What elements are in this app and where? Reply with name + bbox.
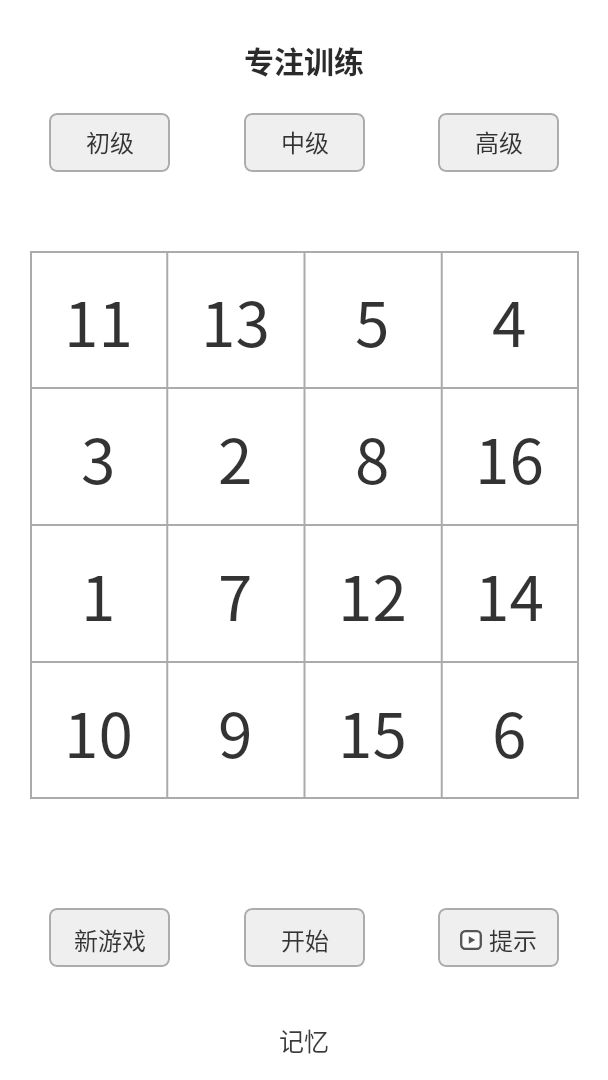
staticText: 初级 [86, 124, 134, 159]
staticText: 4 [492, 275, 527, 365]
button[interactable]: 8 [304, 388, 441, 525]
button[interactable]: 3 [30, 388, 167, 525]
button[interactable]: 2 [167, 388, 304, 525]
staticText: 7 [218, 549, 253, 639]
staticText: 中级 [281, 124, 329, 159]
button[interactable]: 10 [30, 662, 167, 799]
staticText: 6 [492, 686, 527, 776]
button[interactable]: 6 [441, 662, 578, 799]
button[interactable]: 中级 [244, 113, 365, 172]
staticText: 5 [355, 275, 390, 365]
staticText: 13 [201, 275, 270, 365]
button[interactable]: 13 [167, 251, 304, 388]
staticText: 开始 [281, 922, 329, 957]
staticText: 16 [475, 412, 544, 502]
button[interactable]: 7 [167, 525, 304, 662]
staticText: 1 [81, 549, 116, 639]
button[interactable]: 新游戏 [49, 908, 170, 967]
staticText: 3 [81, 412, 116, 502]
button[interactable]: 开始 [244, 908, 365, 967]
button[interactable]: 5 [304, 251, 441, 388]
button[interactable]: 1 [30, 525, 167, 662]
button[interactable]: 高级 [438, 113, 559, 172]
staticText: 高级 [475, 124, 523, 159]
button[interactable]: 15 [304, 662, 441, 799]
staticText: 记忆 [0, 1022, 608, 1058]
staticText: 新游戏 [74, 922, 146, 957]
button[interactable]: 提示 Hint [438, 908, 559, 967]
staticText: 10 [64, 686, 133, 776]
other: 提示 Hint [460, 930, 482, 950]
button[interactable]: 11 [30, 251, 167, 388]
staticText: 9 [218, 686, 253, 776]
staticText: 8 [355, 412, 390, 502]
staticText: 提示 [489, 922, 537, 957]
staticText: 15 [338, 686, 407, 776]
button[interactable]: 9 [167, 662, 304, 799]
button[interactable]: 4 [441, 251, 578, 388]
staticText: 11 [64, 275, 133, 365]
button[interactable]: 16 [441, 388, 578, 525]
staticText: 2 [218, 412, 253, 502]
staticText: 专注训练 [0, 38, 608, 81]
button[interactable]: 14 [441, 525, 578, 662]
button[interactable]: 12 [304, 525, 441, 662]
button[interactable]: 初级 [49, 113, 170, 172]
staticText: 12 [338, 549, 407, 639]
staticText: 14 [475, 549, 544, 639]
